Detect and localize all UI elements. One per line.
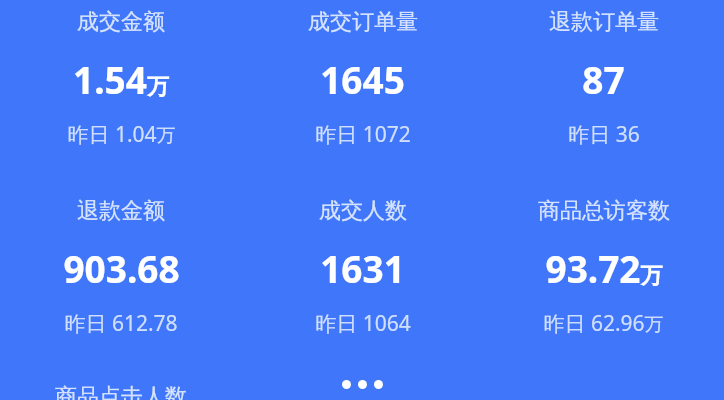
- staticText: 1631: [320, 243, 405, 293]
- staticText: 昨日 1.04万: [67, 120, 176, 149]
- staticText: 昨日 612.78: [64, 309, 178, 338]
- button[interactable]: 退款金额: [0, 197, 242, 338]
- staticText: 昨日 1064: [315, 309, 411, 338]
- button[interactable]: 商品点击人数: [55, 383, 187, 400]
- staticText: 成交人数: [319, 197, 407, 225]
- staticText: 87: [582, 54, 625, 104]
- staticText: 商品总访客数: [538, 197, 670, 225]
- button[interactable]: Page indicator: [342, 380, 383, 389]
- button[interactable]: 商品总访客数: [483, 197, 724, 338]
- staticText: 1.54万: [73, 54, 169, 104]
- staticText: 1645: [320, 54, 405, 104]
- staticText: 昨日 62.96万: [543, 309, 664, 338]
- staticText: 昨日 36: [568, 120, 640, 149]
- staticText: 成交金额: [77, 8, 165, 36]
- staticText: 退款金额: [77, 197, 165, 225]
- button[interactable]: 成交金额: [0, 8, 242, 149]
- button[interactable]: 退款订单量: [483, 8, 724, 149]
- staticText: 903.68: [63, 243, 180, 293]
- staticText: 退款订单量: [549, 8, 659, 36]
- staticText: 成交订单量: [308, 8, 418, 36]
- staticText: 昨日 1072: [315, 120, 411, 149]
- staticText: 93.72万: [545, 243, 663, 293]
- button[interactable]: 成交订单量: [242, 8, 483, 149]
- button[interactable]: 成交人数: [242, 197, 483, 338]
